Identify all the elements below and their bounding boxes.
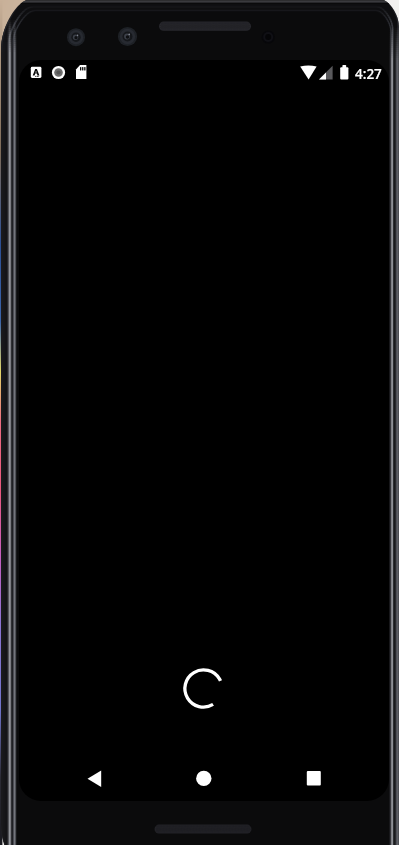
button[interactable]: Recent apps <box>292 762 336 801</box>
button[interactable]: Home <box>182 762 226 801</box>
button[interactable]: Back <box>75 762 119 801</box>
staticText: 4:27 <box>355 65 382 83</box>
